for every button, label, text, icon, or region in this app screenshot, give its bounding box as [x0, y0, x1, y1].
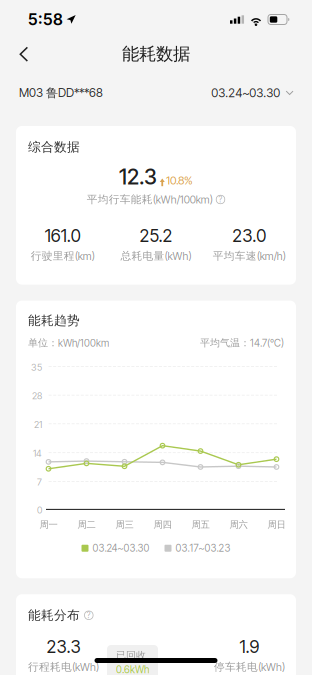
staticText: 23.0 — [232, 225, 266, 246]
staticText: 1.9 — [239, 636, 259, 657]
staticText: 21 — [34, 419, 42, 430]
staticText: 能耗分布 — [28, 607, 80, 623]
staticText: 10.8% — [166, 174, 193, 187]
staticText: 周日 — [267, 519, 285, 531]
staticText: 总耗电量(kWh) — [120, 249, 191, 263]
staticText: 行驶里程(km) — [31, 249, 95, 263]
staticText: ? — [87, 610, 91, 620]
staticText: 综合数据 — [28, 139, 80, 155]
staticText: 平均车速(km/h) — [213, 249, 286, 263]
staticText: 单位：kWh/100km — [28, 337, 109, 349]
staticText: 03.24~03.30 — [211, 86, 280, 100]
button[interactable]: Back — [0, 36, 45, 72]
staticText: 行程耗电(kWh) — [28, 660, 99, 674]
staticText: 0.6kWh — [116, 664, 149, 675]
staticText: 7 — [37, 477, 42, 488]
staticText: 03.17~03.23 — [175, 542, 230, 554]
staticText: 能耗趋势 — [28, 313, 80, 329]
button[interactable]: 03.24~03.30 — [211, 80, 294, 106]
staticText: M03 鲁DD***68 — [19, 85, 103, 101]
staticText: 14 — [33, 448, 42, 459]
staticText: 已回收 — [116, 649, 146, 662]
staticText: 周一 — [39, 519, 57, 531]
staticText: 23.3 — [46, 636, 80, 657]
staticText: 周二 — [77, 519, 95, 531]
staticText: 周六 — [229, 519, 247, 531]
staticText: 35 — [31, 362, 42, 373]
staticText: 周三 — [115, 519, 133, 531]
staticText: 25.2 — [139, 225, 172, 246]
staticText: 周四 — [153, 519, 171, 531]
staticText: 能耗数据 — [122, 43, 190, 65]
staticText: 停车耗电(kWh) — [214, 660, 285, 674]
staticText: 161.0 — [45, 225, 81, 246]
staticText: 平均气温：14.7(°C) — [200, 337, 284, 349]
staticText: 03.24~03.30 — [92, 542, 149, 554]
staticText: 0 — [37, 504, 42, 516]
staticText: 12.3 — [119, 164, 157, 190]
staticText: 28 — [32, 390, 42, 402]
staticText: 周五 — [191, 519, 209, 531]
staticText: 平均行车能耗(kWh/100km) — [87, 193, 213, 206]
staticText: 5:58 — [28, 10, 63, 29]
staticText: ? — [218, 195, 222, 204]
